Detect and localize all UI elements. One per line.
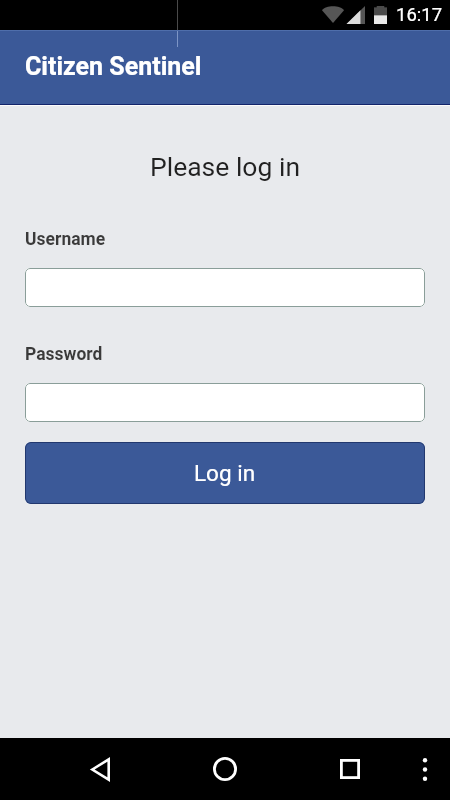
button[interactable]: Password field <box>25 383 425 422</box>
button[interactable]: Home <box>195 738 255 800</box>
staticText: Please log in <box>0 151 450 182</box>
button[interactable]: More options <box>404 738 446 800</box>
button[interactable]: Recent apps <box>320 738 380 800</box>
button[interactable]: Back <box>70 738 130 800</box>
staticText: Log in <box>194 460 256 486</box>
staticText: 16:17 <box>396 4 443 26</box>
staticText: Citizen Sentinel <box>25 52 202 81</box>
staticText: Password <box>25 344 103 365</box>
button[interactable]: Username field <box>25 268 425 307</box>
button[interactable]: Log in <box>25 442 425 504</box>
staticText: Username <box>25 229 106 250</box>
